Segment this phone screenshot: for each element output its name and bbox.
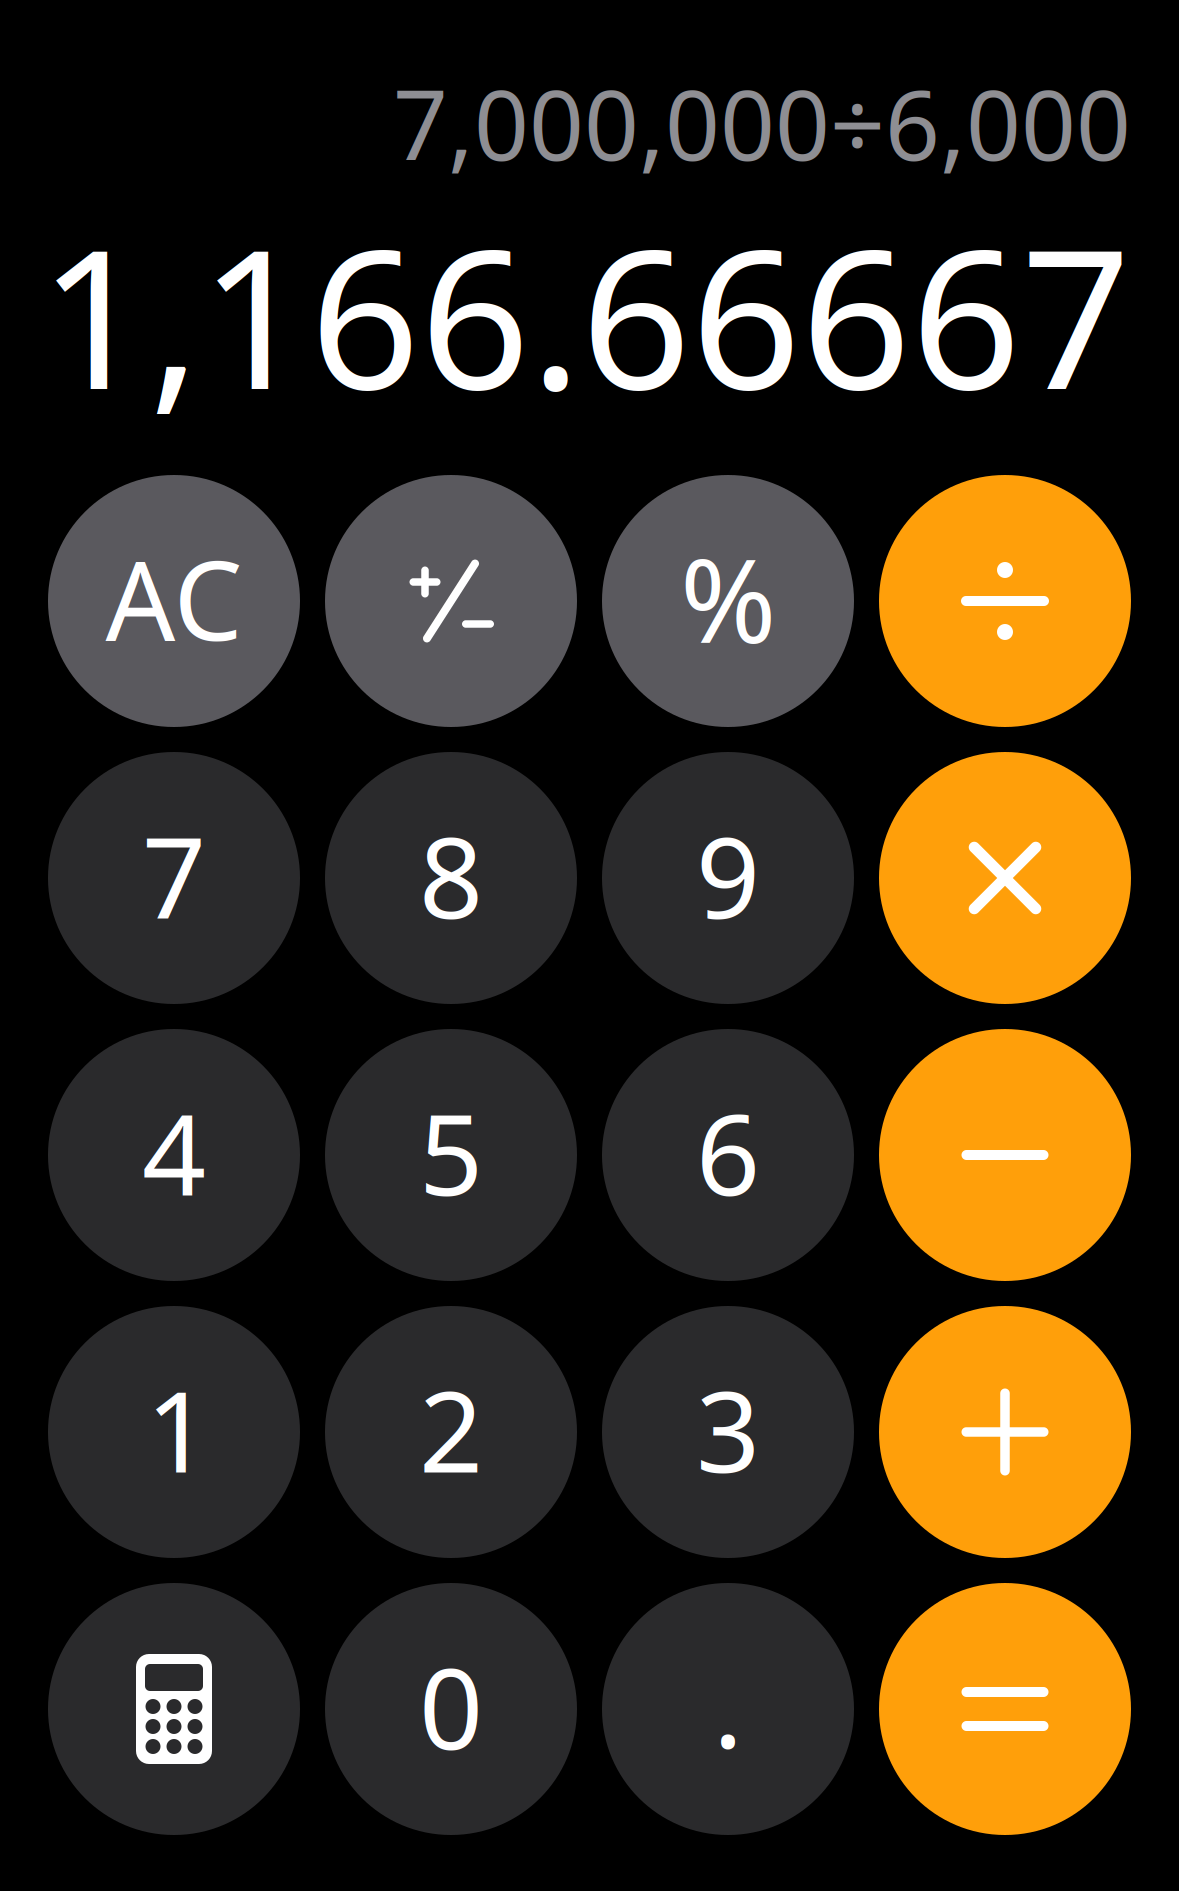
- button[interactable]: 5: [325, 1029, 577, 1281]
- staticText: 5: [419, 1078, 483, 1226]
- button[interactable]: 8: [325, 752, 577, 1004]
- staticText: .: [713, 1630, 743, 1778]
- button[interactable]: 4: [48, 1029, 300, 1281]
- staticText: 7,000,000÷6,000: [393, 59, 1131, 187]
- button[interactable]: Plus minus: [325, 475, 577, 727]
- staticText: %: [680, 521, 776, 675]
- button[interactable]: 2: [325, 1306, 577, 1558]
- button[interactable]: Minus: [879, 1029, 1131, 1281]
- staticText: 3: [696, 1355, 760, 1503]
- button[interactable]: 7: [48, 752, 300, 1004]
- button[interactable]: 9: [602, 752, 854, 1004]
- staticText: 4: [142, 1078, 206, 1226]
- staticText: 2: [419, 1355, 483, 1503]
- button[interactable]: 1: [48, 1306, 300, 1558]
- button[interactable]: 6: [602, 1029, 854, 1281]
- staticText: 8: [419, 801, 483, 949]
- staticText: 6: [696, 1078, 760, 1226]
- staticText: 0: [419, 1632, 483, 1780]
- button[interactable]: Divide: [879, 475, 1131, 727]
- staticText: 7: [142, 801, 206, 949]
- staticText: 1,166.66667: [39, 187, 1131, 442]
- button[interactable]: 3: [602, 1306, 854, 1558]
- button[interactable]: All Clear: [48, 475, 300, 727]
- button[interactable]: Percent: [602, 475, 854, 727]
- staticText: 9: [696, 801, 760, 949]
- staticText: AC: [105, 525, 242, 671]
- button[interactable]: 0: [325, 1583, 577, 1835]
- button[interactable]: Multiply: [879, 752, 1131, 1004]
- button[interactable]: Decimal point: [602, 1583, 854, 1835]
- button[interactable]: Equals: [879, 1583, 1131, 1835]
- staticText: 1: [146, 1355, 210, 1503]
- button[interactable]: Plus: [879, 1306, 1131, 1558]
- button[interactable]: Calculator: [48, 1583, 300, 1835]
